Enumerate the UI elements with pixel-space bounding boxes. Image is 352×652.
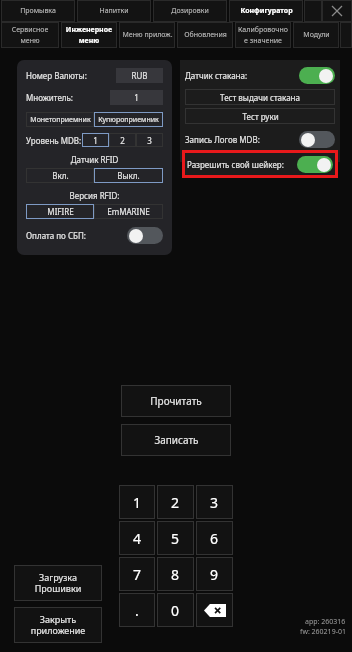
button[interactable]: Калибровочное значение: [235, 22, 291, 48]
button[interactable]: Закрыть приложение: [14, 607, 102, 643]
button[interactable]: Обновления: [177, 22, 233, 48]
staticText: 3: [210, 493, 219, 512]
button[interactable]: 1: [119, 485, 155, 519]
staticText: fw: 260219-01: [300, 627, 346, 637]
staticText: 9: [210, 565, 219, 584]
staticText: Номер Валюты:: [26, 70, 87, 81]
button[interactable]: Тест руки: [185, 108, 335, 124]
staticText: Конфигуратор: [240, 6, 293, 16]
staticText: Записать: [154, 433, 199, 447]
button[interactable]: 5: [157, 521, 194, 555]
button[interactable]: Backspace: [196, 593, 233, 627]
staticText: 1: [134, 92, 139, 103]
button[interactable]: Toggle on: [299, 67, 335, 84]
button[interactable]: 2: [109, 133, 136, 147]
staticText: Датчик стакана:: [185, 70, 248, 81]
staticText: Закрыть приложение: [14, 613, 102, 637]
button[interactable]: Промывка: [1, 0, 75, 22]
staticText: Запись Логов MDB:: [185, 134, 260, 145]
button[interactable]: 7: [119, 557, 155, 591]
staticText: EmMARINE: [107, 206, 150, 217]
staticText: MIFIRE: [47, 206, 74, 217]
staticText: 2: [171, 493, 180, 512]
staticText: .: [135, 601, 139, 620]
staticText: 0: [171, 601, 180, 620]
button[interactable]: 0: [157, 593, 194, 627]
staticText: Промывка: [20, 6, 56, 16]
button[interactable]: EmMARINE: [94, 204, 163, 219]
staticText: app: 260316: [305, 617, 346, 627]
button[interactable]: Выкл.: [94, 168, 163, 183]
button[interactable]: 6: [196, 521, 233, 555]
staticText: Версия RFID:: [26, 190, 163, 201]
staticText: Выкл.: [117, 170, 140, 181]
button[interactable]: Toggle off: [299, 131, 335, 148]
staticText: Монетоприемник: [30, 115, 91, 125]
button[interactable]: 9: [196, 557, 233, 591]
button[interactable]: 2: [157, 485, 194, 519]
button[interactable]: Сервисное меню: [1, 22, 59, 48]
staticText: Инженерное меню: [63, 25, 115, 45]
staticText: Купюроприемник: [98, 115, 159, 125]
button[interactable]: Модули: [293, 22, 339, 48]
staticText: Дозировки: [171, 6, 209, 16]
button[interactable]: RUB: [116, 68, 163, 83]
staticText: 3: [147, 135, 152, 146]
button[interactable]: 1: [82, 133, 109, 147]
button[interactable]: Купюроприемник: [94, 112, 163, 127]
button[interactable]: 8: [157, 557, 194, 591]
staticText: Обновления: [184, 30, 227, 40]
staticText: Разрешить свой шейкер:: [187, 159, 284, 170]
staticText: Прочитать: [150, 394, 202, 408]
button[interactable]: Close: [322, 0, 352, 22]
button[interactable]: Записать: [121, 424, 231, 456]
staticText: 7: [133, 565, 142, 584]
staticText: Оплата по СБП:: [26, 230, 86, 241]
button[interactable]: Загрузка Прошивки: [14, 565, 102, 601]
button[interactable]: MIFIRE: [26, 204, 94, 219]
button[interactable]: Конфигуратор: [229, 0, 303, 22]
button[interactable]: Инженерное меню: [61, 22, 117, 48]
staticText: 5: [171, 529, 180, 548]
button[interactable]: Меню прилож.: [119, 22, 175, 48]
button[interactable]: Напитки: [77, 0, 151, 22]
staticText: Уровень MDB:: [26, 135, 82, 146]
button[interactable]: Разрешить свой шейкер:: [182, 150, 338, 178]
staticText: Датчик RFID: [26, 154, 163, 165]
staticText: 8: [171, 565, 180, 584]
staticText: Калибровочное значение: [237, 25, 289, 45]
button[interactable]: Вкл.: [26, 168, 94, 183]
staticText: 6: [210, 529, 219, 548]
staticText: Вкл.: [52, 170, 69, 181]
button[interactable]: 1: [110, 90, 163, 105]
button[interactable]: Датчик стакана:: [185, 65, 335, 85]
staticText: 2: [120, 135, 125, 146]
staticText: Загрузка Прошивки: [14, 571, 102, 595]
button[interactable]: 3: [136, 133, 163, 147]
button[interactable]: .: [119, 593, 155, 627]
staticText: 4: [133, 529, 142, 548]
button[interactable]: Монетоприемник: [26, 112, 94, 127]
staticText: Напитки: [99, 6, 129, 16]
staticText: Сервисное меню: [3, 25, 57, 45]
staticText: Тест выдачи стакана: [220, 92, 300, 103]
button[interactable]: Дозировки: [153, 0, 227, 22]
staticText: Модули: [303, 30, 330, 40]
button[interactable]: Прочитать: [121, 385, 231, 417]
button[interactable]: 4: [119, 521, 155, 555]
button[interactable]: Тест выдачи стакана: [185, 89, 335, 105]
button[interactable]: Toggle on: [297, 156, 333, 173]
staticText: Множитель:: [26, 92, 73, 103]
button[interactable]: Запись Логов MDB:: [185, 129, 335, 149]
staticText: 1: [133, 493, 142, 512]
button[interactable]: Toggle off: [127, 227, 163, 244]
staticText: Меню прилож.: [122, 30, 173, 40]
staticText: Тест руки: [242, 111, 279, 122]
button[interactable]: 3: [196, 485, 233, 519]
staticText: 1: [93, 135, 98, 146]
staticText: RUB: [131, 70, 148, 81]
